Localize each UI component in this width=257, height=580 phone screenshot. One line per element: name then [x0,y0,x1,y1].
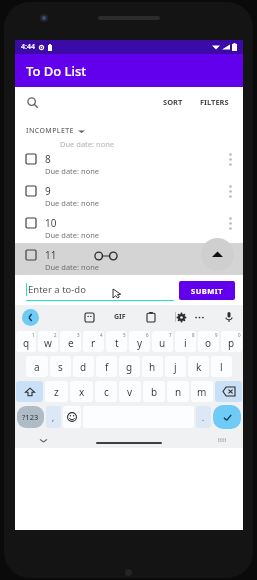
button[interactable]: Complete 11 [15,243,243,275]
button[interactable]: f [96,356,117,377]
staticText: 5 [123,332,126,338]
button[interactable]: . [196,406,211,428]
button[interactable]: Complete 10 [26,218,36,228]
button[interactable]: w [38,331,58,352]
staticText: Enter a to-do [28,283,86,296]
button[interactable]: d [73,356,94,377]
button[interactable]: Complete 10 [15,211,243,243]
staticText: t [115,336,119,350]
button[interactable]: Settings [174,310,188,324]
button[interactable]: i [175,331,196,352]
button[interactable]: Voice input [222,310,236,324]
staticText: 4:44 [21,42,35,52]
staticText: 3 [77,332,80,338]
button[interactable]: q [16,331,36,352]
button[interactable]: Search [22,92,42,112]
button[interactable]: SUBMIT [179,281,235,300]
button[interactable]: Backspace [215,381,242,402]
staticText: Due date: none [45,198,100,208]
staticText: 7 [169,332,172,338]
button[interactable]: z [45,381,68,402]
staticText: 1 [32,332,35,338]
button[interactable]: Home [96,442,162,444]
button[interactable]: Scroll to top [201,238,234,271]
button[interactable]: c [95,381,117,402]
staticText: SORT [163,97,183,107]
button[interactable]: Hide keyboard [37,434,49,446]
button[interactable]: , [46,406,61,428]
button[interactable]: GIF [112,310,128,324]
button[interactable]: Switch keyboard [217,435,227,445]
button[interactable]: More [192,310,206,324]
staticText: y [137,336,143,350]
button[interactable]: t [106,331,127,352]
button[interactable]: g [119,356,140,377]
button[interactable]: Back [22,309,39,326]
button[interactable]: Done [213,405,241,429]
button[interactable]: b [143,381,165,402]
button[interactable]: e [60,331,81,352]
button[interactable]: To Do List [15,54,243,87]
staticText: 6 [146,332,149,338]
staticText: w [44,336,52,350]
button[interactable]: Emoji [63,406,81,428]
button[interactable]: FILTERS [194,93,235,111]
staticText: 4 [100,332,103,338]
button[interactable]: m [191,381,213,402]
button[interactable]: u [152,331,173,352]
staticText: q [23,336,30,350]
button[interactable]: h [142,356,163,377]
button[interactable]: More options for 10 [223,214,237,232]
button[interactable]: More options for 8 [223,150,237,168]
staticText: l [220,360,223,374]
staticText: , [52,412,55,423]
staticText: f [105,360,109,374]
staticText: 9 [45,184,51,198]
button[interactable]: SORT [157,93,189,111]
button[interactable]: Complete 11 [26,250,36,260]
staticText: 9 [215,332,218,338]
staticText: h [149,360,156,374]
staticText: 0 [238,332,241,338]
button[interactable]: Clipboard [144,310,158,324]
button[interactable]: Complete 8 [15,147,243,179]
button[interactable]: Complete 8 [26,154,36,164]
button[interactable]: Shift [16,381,43,402]
button[interactable]: Complete 9 [26,186,36,196]
button[interactable]: p [221,331,242,352]
staticText: p [228,336,235,350]
staticText: Due date: none [45,166,100,176]
staticText: SUBMIT [191,286,224,296]
staticText: 2 [54,332,57,338]
button[interactable]: l [211,356,232,377]
staticText: Due date: none [45,262,100,272]
button[interactable]: y [129,331,150,352]
button[interactable]: j [165,356,186,377]
staticText: z [54,385,59,399]
button[interactable]: o [198,331,219,352]
staticText: 11 [45,248,57,262]
button[interactable]: Stickers [82,310,96,324]
button[interactable]: r [83,331,104,352]
button[interactable]: x [70,381,93,402]
button[interactable]: s [50,356,71,377]
staticText: g [126,360,133,374]
button[interactable]: ?123 [17,406,44,428]
staticText: a [34,360,40,374]
staticText: n [175,385,182,399]
button[interactable]: v [119,381,141,402]
staticText: ?123 [22,412,39,422]
button[interactable]: a [26,356,48,377]
button[interactable]: Complete 9 [15,179,243,211]
staticText: Due date: none [60,139,115,147]
button[interactable]: n [167,381,189,402]
button[interactable]: Enter a to-do [26,279,174,301]
staticText: j [174,360,177,374]
staticText: v [127,385,133,399]
button[interactable]: k [188,356,209,377]
staticText: x [79,385,85,399]
button[interactable]: INCOMPLETE [15,123,243,139]
button[interactable]: More options for 9 [223,182,237,200]
